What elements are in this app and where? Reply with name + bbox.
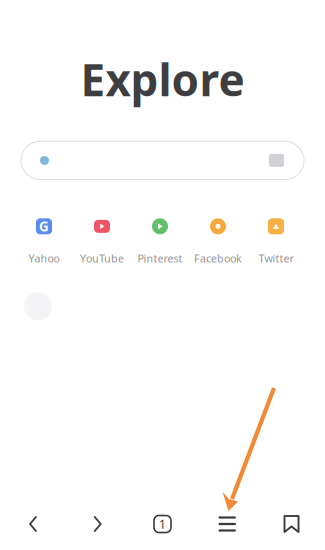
staticText: 1 bbox=[159, 516, 166, 532]
staticText: G bbox=[39, 217, 49, 235]
button[interactable]: YouTube bbox=[73, 215, 131, 267]
button[interactable]: Back bbox=[10, 507, 56, 541]
staticText: Explore bbox=[80, 50, 244, 108]
button[interactable]: G bbox=[15, 215, 73, 267]
button[interactable]: Add favorite bbox=[9, 291, 67, 321]
button[interactable]: Facebook bbox=[189, 215, 247, 267]
button[interactable] bbox=[21, 141, 304, 179]
staticText: Pinterest bbox=[137, 251, 182, 265]
staticText: Facebook bbox=[194, 251, 242, 265]
staticText: YouTube bbox=[80, 251, 124, 265]
button[interactable]: Menu bbox=[204, 507, 250, 541]
button[interactable]: Forward bbox=[75, 507, 121, 541]
button[interactable]: Twitter bbox=[247, 215, 305, 267]
staticText: Twitter bbox=[258, 251, 293, 265]
button[interactable]: Tabs bbox=[139, 507, 185, 541]
staticText: Yahoo bbox=[28, 251, 59, 265]
button[interactable]: Bookmarks bbox=[269, 507, 315, 541]
button[interactable]: Pinterest bbox=[131, 215, 189, 267]
